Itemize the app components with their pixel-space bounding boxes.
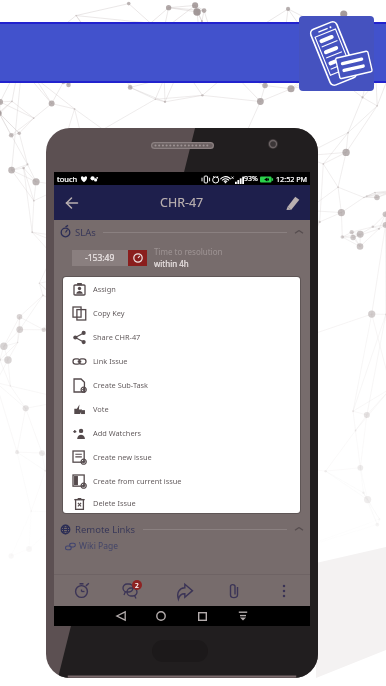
staticText: touch [57,174,78,184]
button[interactable]: Wiki Page [65,540,118,552]
button[interactable]: Link Issue [63,349,300,373]
staticText: Wiki Page [79,540,118,552]
staticText: Time to resolution [154,246,223,257]
button[interactable]: Add Watchers [63,421,300,445]
button[interactable]: Attach file [222,576,246,606]
staticText: 12:52 PM [276,174,308,184]
button[interactable]: Copy Key [63,301,300,325]
button[interactable]: Delete Issue [63,493,300,513]
staticText: CHR-47 [160,194,204,211]
staticText: -153:49 [85,252,115,264]
button[interactable]: Hide keyboard [233,606,253,626]
button[interactable]: Create new issue [63,445,300,469]
button[interactable]: Assign [63,277,300,301]
button[interactable]: Home [151,606,171,626]
button[interactable]: App icon [299,16,374,91]
button[interactable]: Share [172,576,196,606]
button[interactable]: Comments [118,576,142,606]
staticText: Copy Key [93,308,125,318]
button[interactable]: Share CHR-47 [63,325,300,349]
staticText: 93% [244,174,258,184]
staticText: Remote Links [75,523,136,536]
button[interactable]: Vote [63,397,300,421]
button[interactable]: Edit [281,191,305,215]
staticText: Share CHR-47 [93,332,141,342]
button[interactable]: Recent apps [192,606,212,626]
staticText: Link Issue [93,356,128,366]
button[interactable]: Log work [69,576,93,606]
staticText: Create from current issue [93,476,182,486]
button[interactable]: Back [111,606,131,626]
staticText: Add Watchers [93,428,142,438]
staticText: Vote [93,404,109,414]
button[interactable]: More options [272,576,296,606]
staticText: Assign [93,284,116,294]
staticText: SLAs [75,226,96,239]
staticText: Delete Issue [93,498,136,508]
staticText: Create new issue [93,452,152,462]
staticText: 2 [135,581,139,590]
button[interactable]: Create from current issue [63,469,300,493]
staticText: Create Sub-Task [93,380,149,390]
button[interactable]: Back [59,190,85,216]
button[interactable]: Create Sub-Task [63,373,300,397]
staticText: within 4h [154,258,189,269]
